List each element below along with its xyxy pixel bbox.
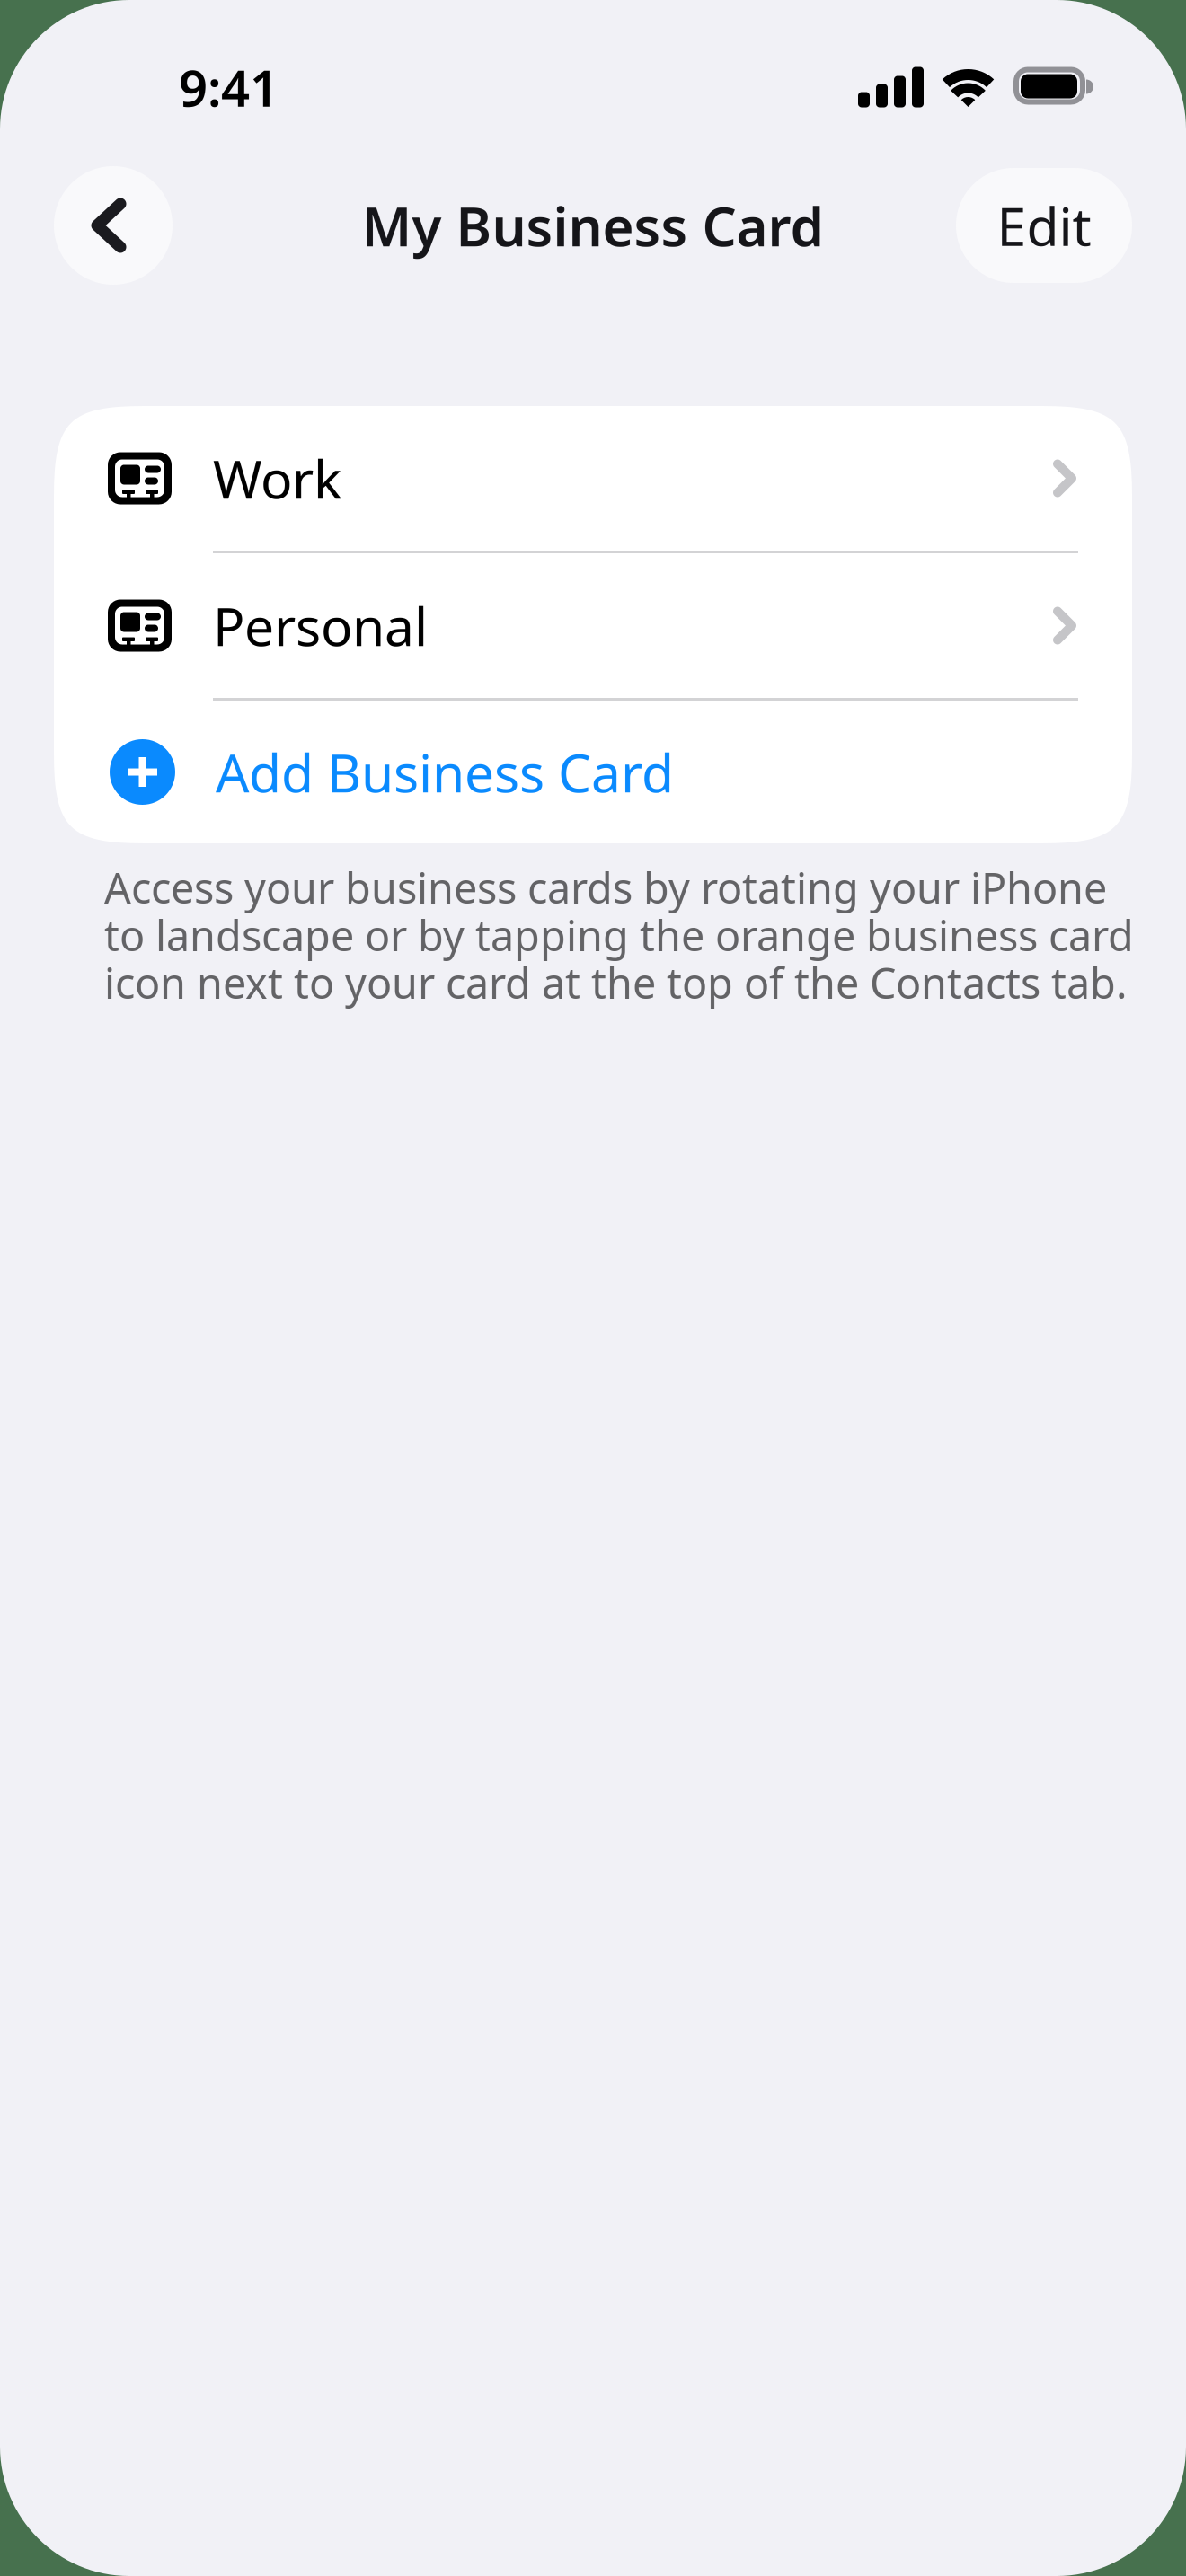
staticText: icon next to your card at the top of the… bbox=[104, 955, 1128, 1010]
staticText: 9:41 bbox=[179, 54, 279, 121]
staticText: Personal bbox=[213, 591, 428, 661]
button[interactable]: Personal bbox=[54, 553, 1132, 698]
staticText: My Business Card bbox=[362, 190, 824, 261]
staticText: Work bbox=[213, 443, 341, 513]
button[interactable]: Edit bbox=[956, 168, 1132, 283]
staticText: Add Business Card bbox=[216, 737, 674, 807]
staticText: Edit bbox=[997, 190, 1091, 260]
staticText: to landscape or by tapping the orange bu… bbox=[104, 907, 1134, 963]
staticText: Access your business cards by rotating y… bbox=[104, 860, 1107, 915]
button[interactable]: Work bbox=[54, 406, 1132, 551]
button[interactable]: Add Business Card bbox=[54, 701, 1132, 843]
button[interactable]: Back bbox=[54, 166, 173, 285]
